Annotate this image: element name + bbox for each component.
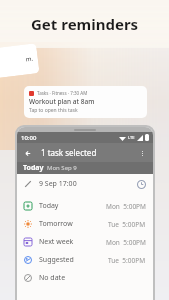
staticText: Get reminders: [31, 14, 139, 34]
staticText: Mon 5:00PM: [106, 238, 146, 247]
staticText: Next week: [39, 237, 74, 247]
staticText: Tue 5:00PM: [108, 256, 146, 265]
staticText: 9 Sep 17:00: [39, 179, 77, 189]
button[interactable]: Tasks · Fitness · 7:30 AM: [24, 86, 147, 118]
other: Edit: [24, 180, 32, 188]
staticText: m.: [25, 55, 34, 63]
staticText: Mon 5:00PM: [106, 202, 146, 211]
button[interactable]: No date: [17, 269, 153, 287]
button[interactable]: Back: [22, 147, 34, 159]
button[interactable]: Back: [17, 143, 153, 162]
staticText: Today: [23, 163, 44, 173]
button[interactable]: Edit: [17, 174, 153, 194]
staticText: Tue 5:00PM: [108, 220, 146, 229]
staticText: LTE: [128, 135, 135, 140]
button[interactable]: Tomorrow: [17, 215, 153, 233]
button[interactable]: Suggested: [17, 251, 153, 269]
button[interactable]: More options: [136, 147, 148, 159]
staticText: Mon Sep 9: [47, 164, 77, 172]
staticText: Today: [39, 201, 59, 211]
staticText: Tomorrow: [39, 219, 73, 229]
button[interactable]: Today: [17, 197, 153, 215]
other: Time: [137, 180, 146, 189]
button[interactable]: Next week: [17, 233, 153, 251]
staticText: Tap to open this task: [29, 107, 78, 114]
staticText: Tasks · Fitness · 7:30 AM: [37, 90, 88, 96]
staticText: 10:00: [21, 134, 37, 142]
staticText: Suggested: [39, 255, 74, 265]
staticText: 1 task selected: [41, 147, 97, 158]
staticText: Workout plan at 8am: [29, 97, 95, 106]
staticText: No date: [39, 273, 66, 283]
